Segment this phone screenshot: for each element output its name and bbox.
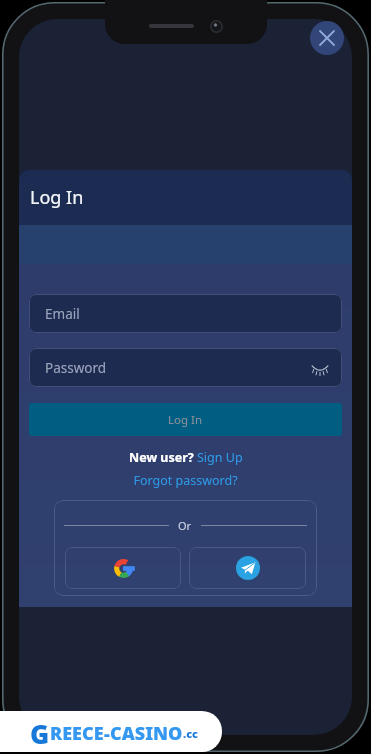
staticText: Sign Up [197,449,243,466]
staticText: New user? [129,449,197,466]
button[interactable]: Forgot password? [19,472,352,489]
button[interactable]: Sign Up [197,449,243,466]
button[interactable]: Sign in with Google [65,547,181,589]
staticText: G [30,716,50,751]
button[interactable]: Password [29,348,342,387]
staticText: Email [45,305,80,323]
staticText: .cc [183,726,199,741]
staticText: - [104,721,110,746]
staticText: REECE [50,721,104,746]
staticText: Log In [168,412,203,428]
staticText: CASINO [110,721,183,746]
button[interactable]: Email [29,294,342,333]
staticText: Log In [30,185,84,210]
staticText: Password [45,359,107,377]
staticText: Forgot password? [133,472,238,489]
staticText: Or [178,518,192,533]
button[interactable]: Sign in with Telegram [189,547,306,589]
button[interactable]: Close [310,21,344,55]
button[interactable]: Show password [308,356,332,380]
button[interactable]: Log In [29,403,342,436]
